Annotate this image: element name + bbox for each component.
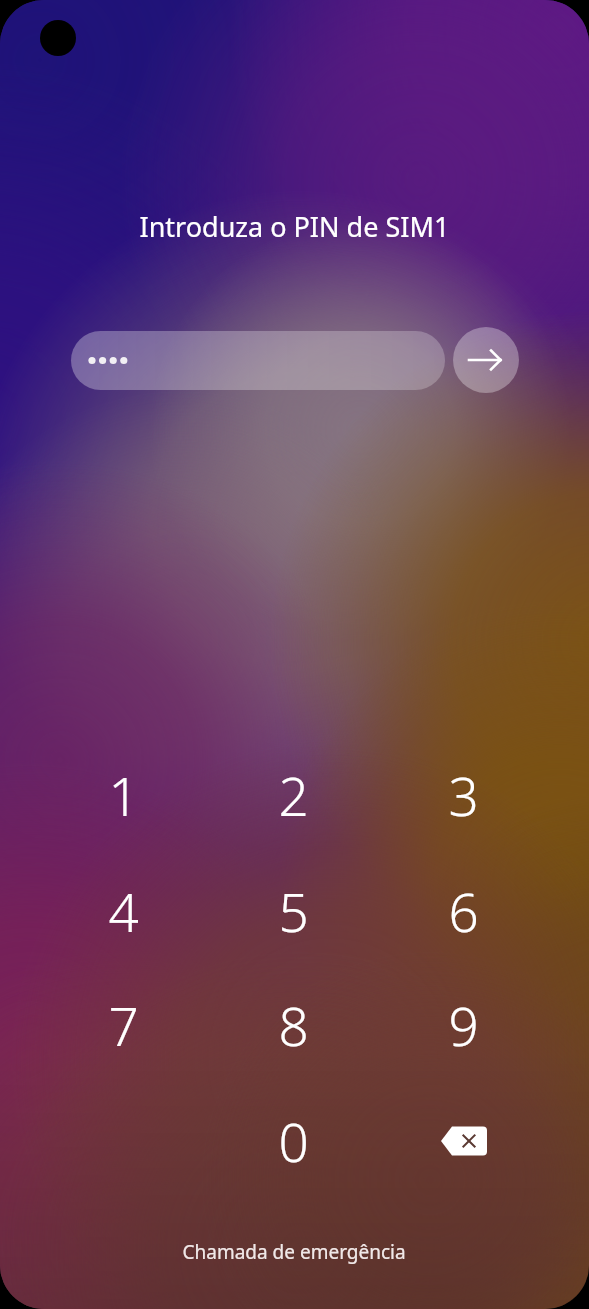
button[interactable]: Apagar: [422, 1099, 506, 1183]
button[interactable]: 3: [422, 753, 506, 837]
button[interactable]: 0: [252, 1099, 336, 1183]
button[interactable]: 6: [422, 869, 506, 953]
button[interactable]: 1: [82, 753, 166, 837]
button[interactable]: 5: [252, 869, 336, 953]
button[interactable]: 9: [422, 983, 506, 1067]
button[interactable]: Chamada de emergência: [150, 1230, 439, 1276]
button[interactable]: Confirmar PIN: [453, 327, 519, 393]
button[interactable]: 8: [252, 983, 336, 1067]
button[interactable]: Campo de PIN: [71, 331, 445, 390]
button[interactable]: 4: [82, 869, 166, 953]
button[interactable]: 2: [252, 753, 336, 837]
button[interactable]: 7: [82, 983, 166, 1067]
